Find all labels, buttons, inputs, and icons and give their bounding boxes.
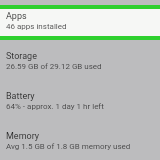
staticText: Apps xyxy=(6,11,27,22)
staticText: Avg 1.5 GB of 1.8 GB memory used xyxy=(6,142,131,151)
staticText: 46 apps installed xyxy=(6,22,67,31)
staticText: Storage xyxy=(6,51,37,62)
button[interactable]: Apps xyxy=(0,11,160,51)
staticText: Battery xyxy=(6,91,35,102)
button[interactable]: Storage xyxy=(0,51,160,91)
button[interactable]: Memory xyxy=(0,131,160,160)
button[interactable]: Battery xyxy=(0,91,160,131)
staticText: 64% - approx. 1 day 1 hr left xyxy=(6,102,104,111)
staticText: 26.59 GB of 29.12 GB used xyxy=(6,62,102,71)
staticText: Memory xyxy=(6,131,40,142)
